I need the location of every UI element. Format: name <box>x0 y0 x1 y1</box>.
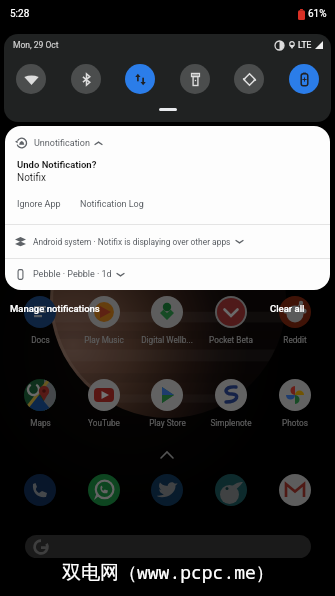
button[interactable]: Flashlight <box>180 64 210 94</box>
staticText: Mon, 29 Oct <box>13 40 59 50</box>
button[interactable]: Notification Log <box>79 197 145 212</box>
button[interactable]: Wi-Fi <box>16 64 46 94</box>
button[interactable]: Docs <box>9 335 71 345</box>
button[interactable]: Android system · Notifix is displaying o… <box>15 225 330 258</box>
button[interactable]: Clear all <box>266 300 309 317</box>
staticText: Ignore App <box>17 199 61 210</box>
staticText: Notifix <box>17 172 47 184</box>
staticText: 5:28 <box>10 8 30 20</box>
staticText: Reddit <box>283 335 307 345</box>
button[interactable]: Manage notifications <box>6 300 104 317</box>
staticText: Pebble · Pebble · 1d <box>33 269 112 280</box>
button[interactable]: Mobile data <box>125 64 155 94</box>
staticText: YouTube <box>88 418 120 428</box>
staticText: 61% <box>308 8 327 20</box>
button[interactable]: Ignore App <box>16 197 62 212</box>
button[interactable]: Photos <box>264 418 326 428</box>
button[interactable]: Simplenote <box>200 418 262 428</box>
button[interactable]: YouTube <box>73 418 135 428</box>
button[interactable]: Reddit <box>264 335 326 345</box>
staticText: Play Music <box>84 335 124 345</box>
staticText: Maps <box>30 418 51 428</box>
button[interactable]: Digital Wellb... <box>136 335 198 345</box>
staticText: Android system · Notifix is displaying o… <box>33 237 231 247</box>
button[interactable] <box>25 535 311 558</box>
staticText: Docs <box>31 335 50 345</box>
staticText: （www.pcpc.me） <box>119 560 274 585</box>
staticText: Digital Wellb... <box>141 335 193 345</box>
staticText: Manage notifications <box>10 303 100 314</box>
staticText: Photos <box>282 418 308 428</box>
button[interactable]: Auto rotate <box>234 64 264 94</box>
staticText: Play Store <box>149 418 186 428</box>
staticText: LTE <box>298 40 312 50</box>
button[interactable]: Pebble · Pebble · 1d <box>15 259 330 290</box>
staticText: Simplenote <box>210 418 252 428</box>
button[interactable]: Maps <box>9 418 71 428</box>
button[interactable]: Unnotification <box>15 130 330 156</box>
staticText: Notification Log <box>80 199 144 210</box>
staticText: Clear all <box>270 303 305 314</box>
staticText: Unnotification <box>34 138 90 149</box>
button[interactable]: Bluetooth <box>71 64 101 94</box>
button[interactable]: Battery saver <box>289 64 319 94</box>
button[interactable]: Play Store <box>136 418 198 428</box>
button[interactable]: Play Music <box>73 335 135 345</box>
button[interactable]: Pocket Beta <box>200 335 262 345</box>
staticText: Pocket Beta <box>209 335 253 345</box>
staticText: Undo Notification? <box>17 159 97 170</box>
staticText: 双电网 <box>62 561 119 585</box>
